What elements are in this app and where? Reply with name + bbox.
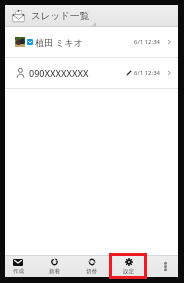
staticText: 6/1 12:34 [134,38,160,46]
staticText: 作成 [13,268,24,275]
button[interactable]: 切替 [73,256,110,277]
button[interactable]: 植田 ミキオ [0,27,184,58]
staticText: スレッド一覧 [31,10,89,22]
button[interactable]: More options [147,256,184,277]
staticText: 090XXXXXXXX [29,67,89,79]
staticText: 6/1 12:34 [134,69,160,77]
button[interactable]: 新着 [36,256,73,277]
staticText: 植田 ミキオ [35,36,83,48]
staticText: 切替 [86,268,97,275]
button[interactable]: 作成 [0,256,36,277]
button[interactable]: 設定 [110,256,147,277]
staticText: 設定 [123,268,134,275]
button[interactable]: 090XXXXXXXX [0,58,184,89]
staticText: 新着 [49,268,60,275]
